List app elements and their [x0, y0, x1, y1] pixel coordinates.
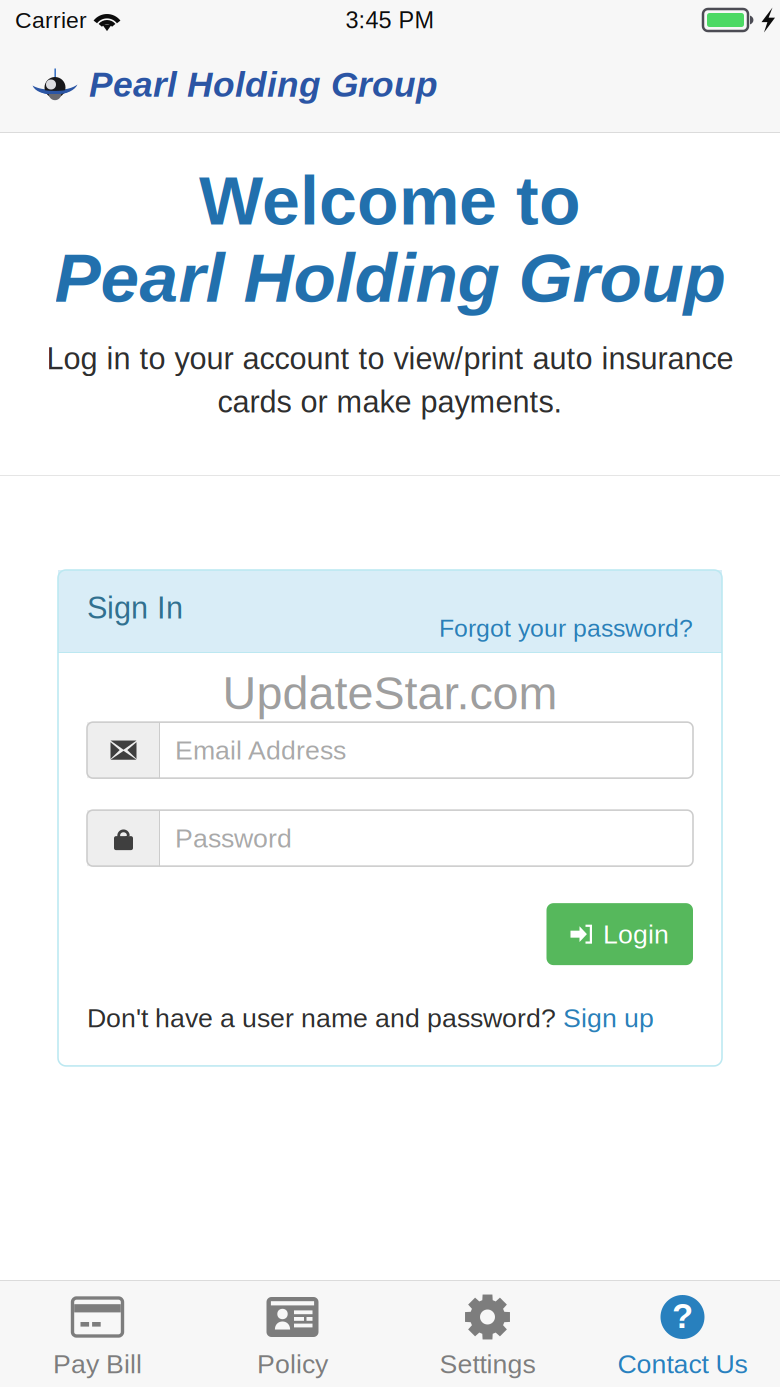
button[interactable]: Policy	[195, 1280, 390, 1387]
staticText: Don't have a user name and password?	[87, 1003, 563, 1033]
staticText: 3:45 PM	[345, 7, 434, 33]
button[interactable]: Email Address	[87, 722, 693, 778]
staticText: Sign In	[87, 591, 183, 625]
staticText: Policy	[257, 1349, 328, 1379]
button[interactable]: Forgot your password?	[439, 614, 693, 642]
staticText: Email Address	[175, 735, 346, 765]
button[interactable]: Password	[87, 810, 693, 866]
button[interactable]: ?	[585, 1280, 780, 1387]
button[interactable]: Settings	[390, 1280, 585, 1387]
staticText: Sign up	[563, 1003, 654, 1033]
staticText: Settings	[439, 1349, 535, 1379]
button[interactable]: Pay Bill	[0, 1280, 195, 1387]
staticText: Log in to your account to view/print aut…	[46, 341, 733, 376]
staticText: UpdateStar.com	[222, 667, 557, 719]
button[interactable]: Sign up	[563, 1003, 654, 1033]
button[interactable]: Login	[546, 903, 693, 965]
staticText: Pearl Holding Group	[89, 65, 438, 104]
staticText: Contact Us	[617, 1349, 747, 1379]
staticText: cards or make payments.	[217, 385, 562, 419]
staticText: Forgot your password?	[439, 614, 693, 642]
staticText: Carrier	[15, 7, 87, 33]
staticText: Pay Bill	[53, 1349, 142, 1379]
staticText: Pearl Holding Group	[54, 239, 725, 316]
staticText: ?	[672, 1297, 693, 1335]
staticText: Password	[175, 823, 292, 853]
staticText: Login	[603, 919, 669, 949]
staticText: Welcome to	[199, 163, 581, 239]
